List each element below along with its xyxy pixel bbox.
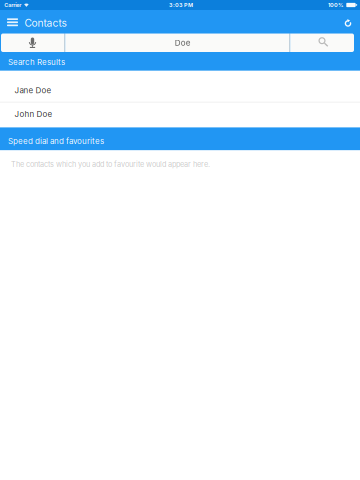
button[interactable]: Voice search <box>1 33 64 52</box>
button[interactable]: Jane Doe <box>0 79 360 102</box>
staticText: Speed dial and favourites <box>8 136 104 146</box>
staticText: Jane Doe <box>14 85 51 95</box>
button[interactable]: Search <box>290 33 354 52</box>
staticText: Search Results <box>8 57 65 67</box>
button[interactable]: John Doe <box>0 103 360 126</box>
button[interactable]: Doe <box>65 33 289 52</box>
staticText: Doe <box>175 38 191 48</box>
staticText: The contacts which you add to favourite … <box>11 160 210 169</box>
staticText: 3:03 PM <box>169 2 193 8</box>
staticText: John Doe <box>14 109 52 119</box>
button[interactable]: Refresh <box>341 10 356 33</box>
staticText: 100% <box>328 2 344 8</box>
staticText: Carrier <box>4 2 21 8</box>
staticText: Contacts <box>24 17 66 29</box>
button[interactable]: Menu <box>5 10 20 33</box>
